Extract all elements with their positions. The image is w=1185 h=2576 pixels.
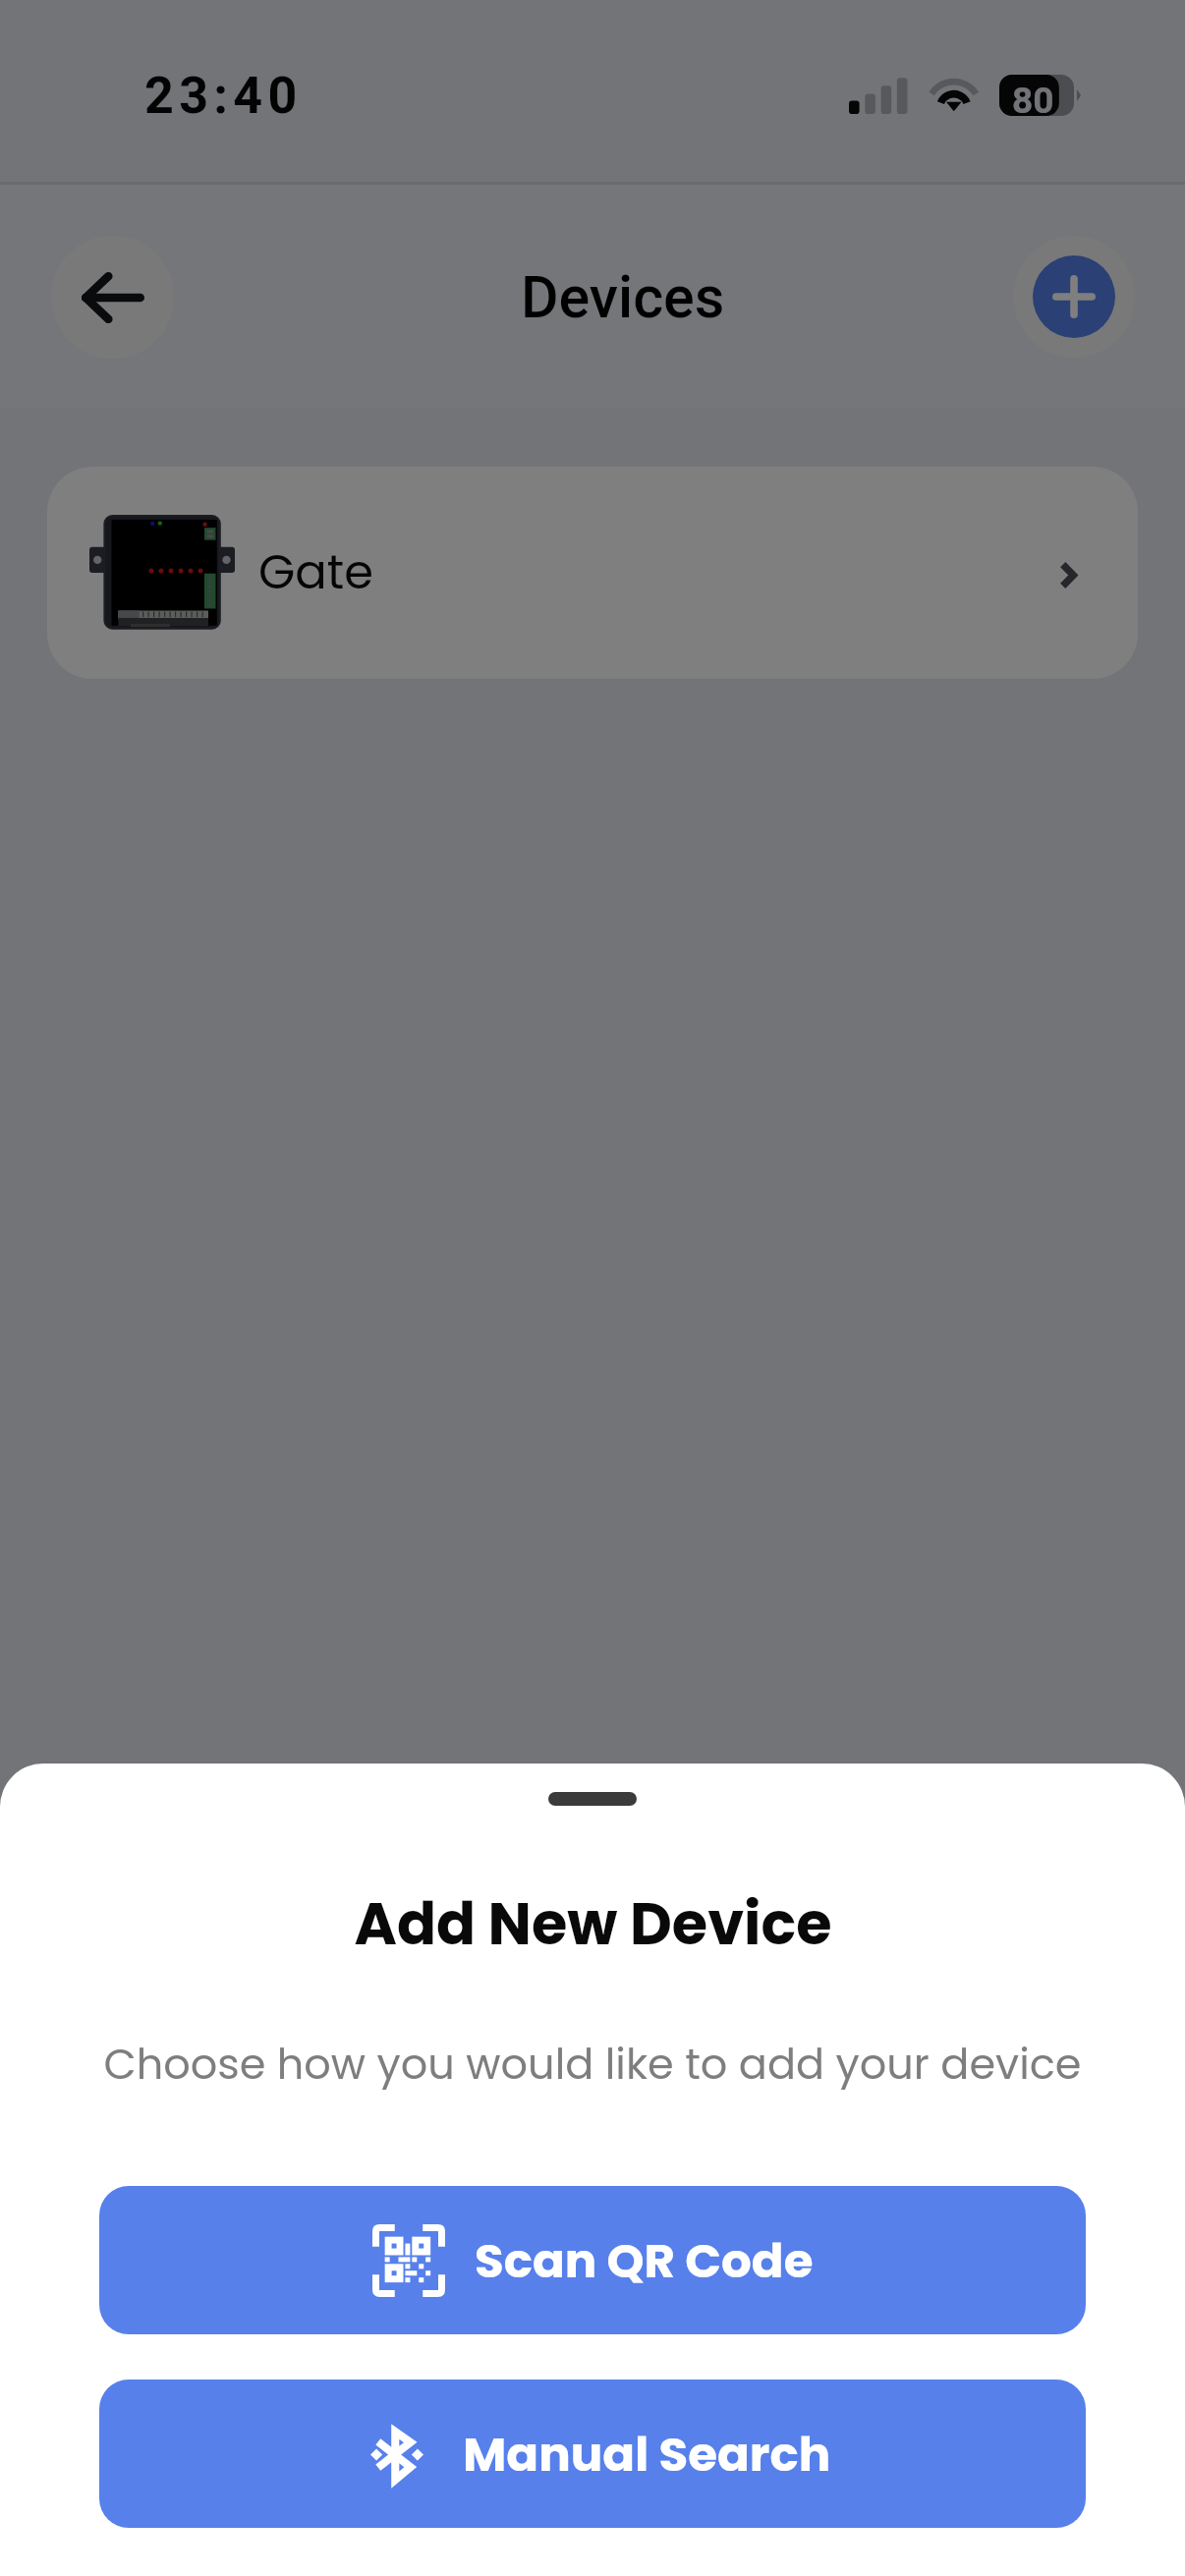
staticText: Scan QR Code bbox=[475, 2227, 814, 2294]
staticText: Manual Search bbox=[463, 2421, 831, 2488]
staticText: 23:40 bbox=[144, 66, 303, 126]
staticText: Add New Device bbox=[354, 1883, 832, 1965]
button[interactable]: Gate bbox=[47, 467, 1138, 679]
staticText: Gate bbox=[258, 539, 374, 605]
staticText: Choose how you would like to add your de… bbox=[103, 2035, 1082, 2094]
button[interactable]: Manual Search bbox=[99, 2380, 1086, 2528]
button[interactable]: Add device bbox=[1013, 236, 1135, 358]
staticText: 80 bbox=[1012, 80, 1054, 122]
staticText: Devices bbox=[521, 263, 725, 331]
button[interactable]: Back bbox=[51, 236, 174, 359]
button[interactable]: Scan QR Code bbox=[99, 2186, 1086, 2334]
